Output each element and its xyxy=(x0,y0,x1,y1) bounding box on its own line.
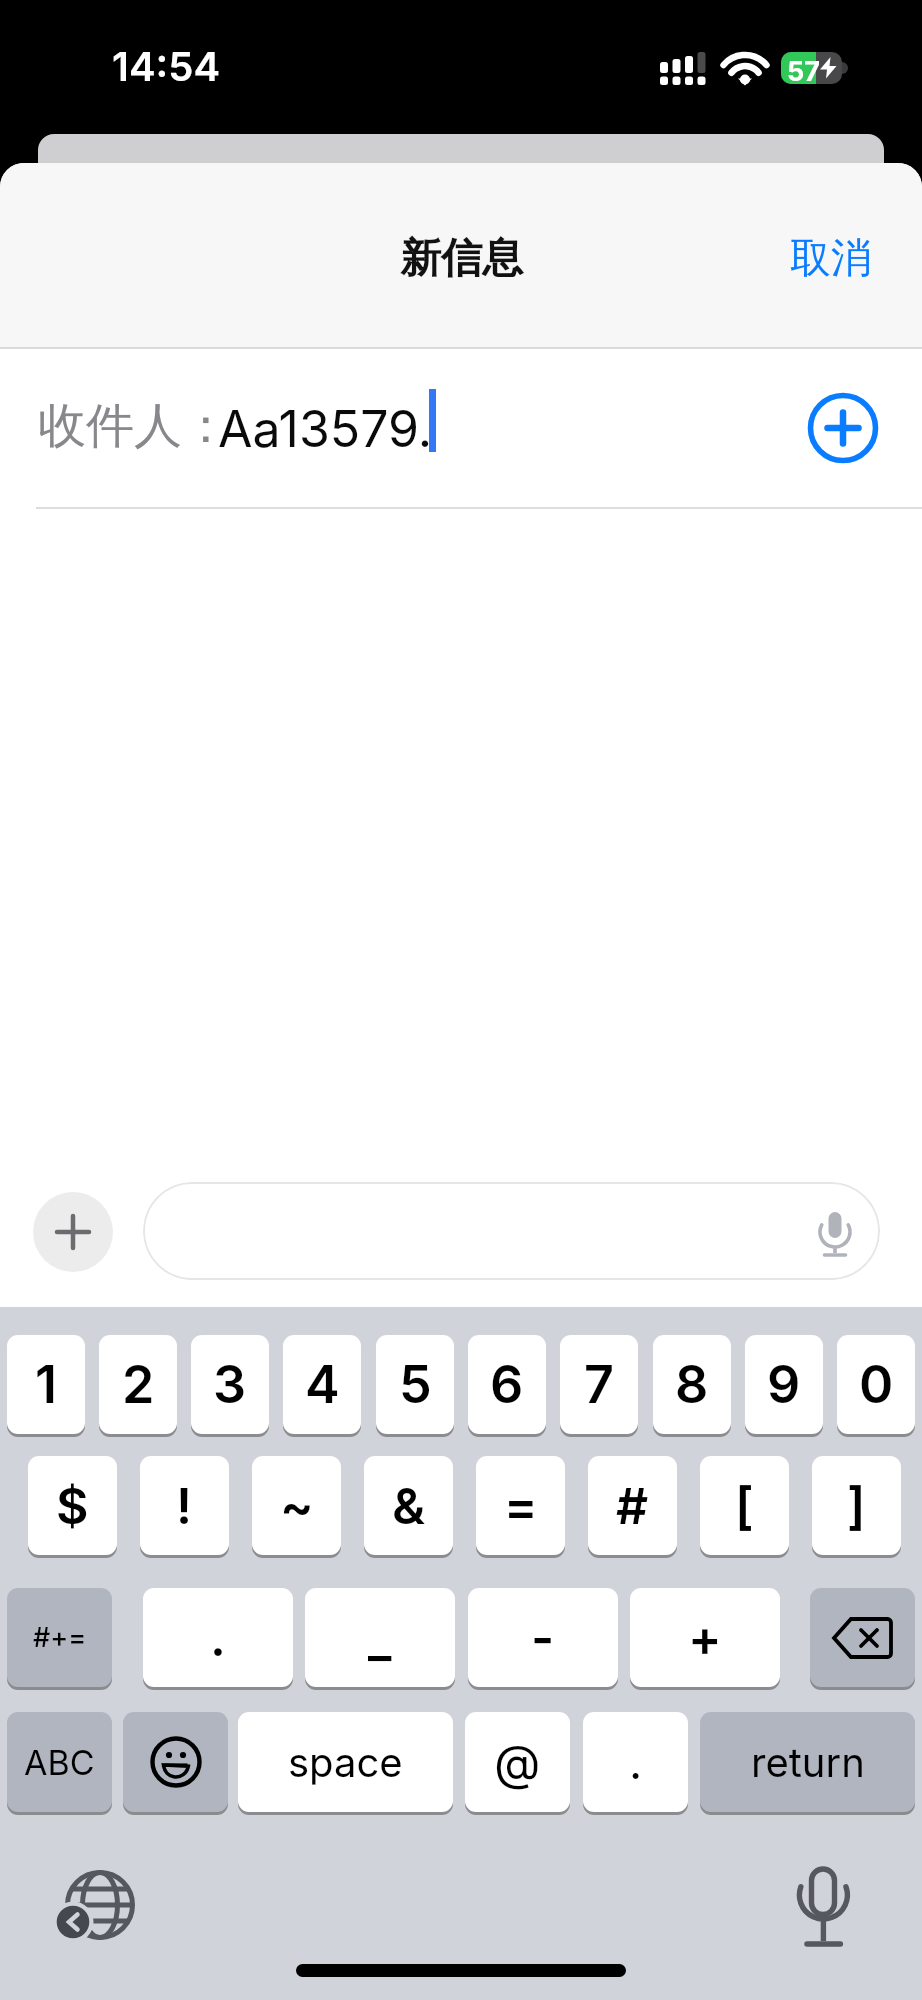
button[interactable]: 0 xyxy=(837,1335,915,1434)
button[interactable]: 4 xyxy=(283,1335,361,1434)
button[interactable]: . xyxy=(143,1588,293,1687)
staticText: 7 xyxy=(584,1353,614,1416)
staticText: 新信息 xyxy=(400,233,523,285)
button[interactable] xyxy=(810,1588,915,1687)
staticText: $ xyxy=(56,1476,89,1536)
button[interactable]: . xyxy=(583,1712,688,1812)
button[interactable] xyxy=(58,1866,142,1950)
button[interactable] xyxy=(123,1712,228,1812)
staticText: # xyxy=(616,1476,649,1536)
staticText: ABC xyxy=(24,1742,95,1783)
staticText: 9 xyxy=(767,1353,801,1416)
button[interactable]: 8 xyxy=(653,1335,731,1434)
button[interactable]: & xyxy=(364,1456,453,1555)
staticText: ~ xyxy=(280,1476,314,1536)
button[interactable]: ! xyxy=(140,1456,229,1555)
staticText: 3 xyxy=(213,1353,247,1416)
button[interactable]: space xyxy=(238,1712,453,1812)
staticText: Aa13579. xyxy=(218,399,433,459)
button[interactable] xyxy=(143,1182,880,1280)
staticText: & xyxy=(392,1476,426,1536)
button[interactable] xyxy=(33,1192,113,1272)
staticText: 1 xyxy=(35,1353,57,1416)
staticText: space xyxy=(288,1738,403,1786)
button[interactable]: 取消 xyxy=(790,233,872,285)
staticText: #+= xyxy=(33,1621,87,1654)
staticText: 14:54 xyxy=(112,42,221,90)
button[interactable]: ] xyxy=(812,1456,901,1555)
staticText: 收件人： xyxy=(38,396,230,456)
button[interactable]: - xyxy=(468,1588,618,1687)
button[interactable]: 3 xyxy=(191,1335,269,1434)
button[interactable]: #+= xyxy=(7,1588,112,1687)
staticText: 4 xyxy=(305,1353,340,1416)
staticText: ] xyxy=(847,1476,866,1536)
staticText: ! xyxy=(176,1476,193,1536)
button[interactable]: 2 xyxy=(99,1335,177,1434)
staticText: [ xyxy=(735,1476,754,1536)
staticText: 6 xyxy=(490,1353,524,1416)
staticText: + xyxy=(688,1608,722,1668)
staticText: 2 xyxy=(122,1353,155,1416)
staticText: return xyxy=(751,1738,865,1786)
staticText: 5 xyxy=(399,1353,432,1416)
button[interactable]: return xyxy=(700,1712,915,1812)
staticText: 0 xyxy=(859,1353,894,1416)
button[interactable]: = xyxy=(476,1456,565,1555)
button[interactable]: 5 xyxy=(376,1335,454,1434)
button[interactable]: 6 xyxy=(468,1335,546,1434)
button[interactable]: $ xyxy=(28,1456,117,1555)
button[interactable]: ~ xyxy=(252,1456,341,1555)
staticText: . xyxy=(629,1734,643,1790)
button[interactable]: ABC xyxy=(7,1712,112,1812)
staticText: = xyxy=(504,1476,538,1536)
staticText: . xyxy=(210,1608,226,1668)
staticText: 8 xyxy=(675,1353,709,1416)
button[interactable] xyxy=(808,393,878,463)
button[interactable]: 7 xyxy=(560,1335,638,1434)
staticText: @ xyxy=(494,1733,541,1791)
button[interactable]: # xyxy=(588,1456,677,1555)
button[interactable]: 9 xyxy=(745,1335,823,1434)
button[interactable]: + xyxy=(630,1588,780,1687)
button[interactable]: @ xyxy=(465,1712,570,1812)
button[interactable]: 1 xyxy=(7,1335,85,1434)
staticText: _ xyxy=(368,1608,392,1668)
button[interactable]: [ xyxy=(700,1456,789,1555)
button[interactable]: _ xyxy=(305,1588,455,1687)
staticText: - xyxy=(531,1608,555,1668)
staticText: 57 xyxy=(787,55,820,88)
button[interactable] xyxy=(795,1862,851,1948)
